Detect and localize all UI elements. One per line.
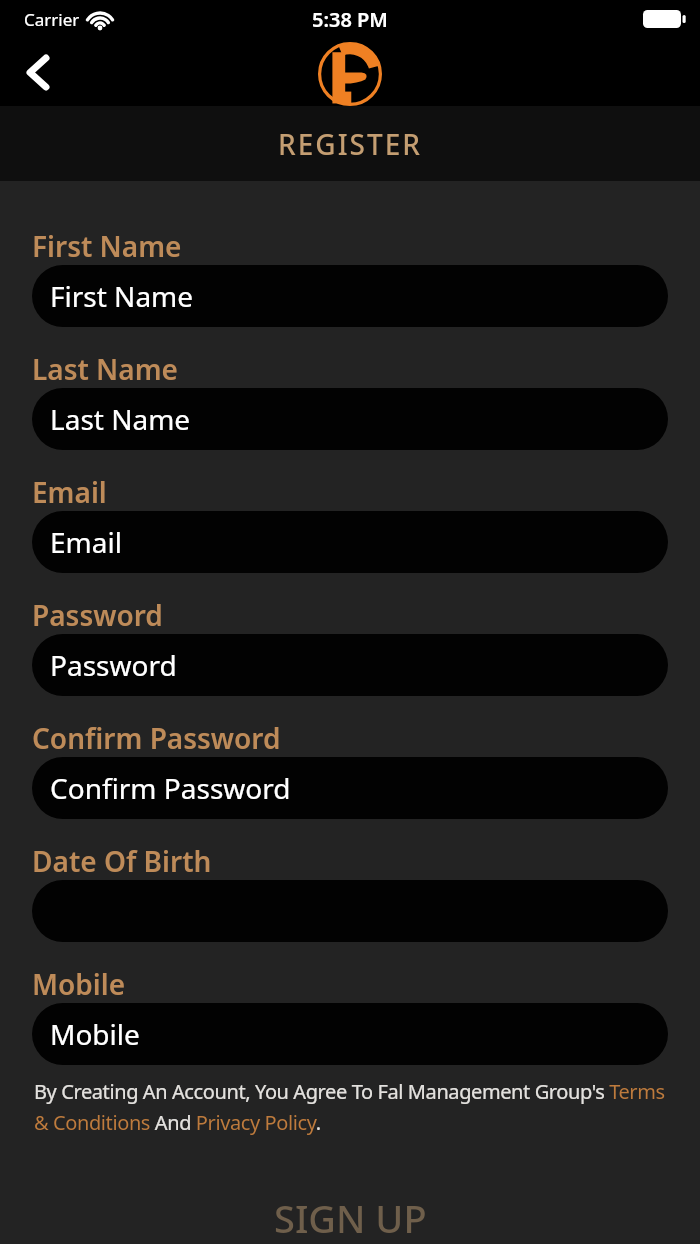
staticText: & Conditions And Privacy Policy.	[34, 1109, 321, 1136]
staticText: Confirm Password	[32, 719, 281, 755]
staticText: By Creating An Account, You Agree To Fal…	[34, 1078, 665, 1105]
staticText: Confirm Password	[50, 769, 291, 807]
button[interactable]: Last Name	[32, 388, 668, 450]
button[interactable]	[16, 50, 60, 94]
staticText: First Name	[32, 227, 182, 263]
button[interactable]: SIGN UP	[0, 1192, 700, 1244]
staticText: Last Name	[50, 400, 191, 438]
staticText: REGISTER	[278, 125, 422, 163]
staticText: Carrier	[24, 8, 80, 31]
button[interactable]: Confirm Password	[32, 757, 668, 819]
staticText: Password	[32, 596, 163, 632]
staticText: SIGN UP	[274, 1192, 427, 1244]
staticText: 5:38 PM	[312, 6, 388, 33]
staticText: Password	[50, 646, 177, 684]
staticText: Date Of Birth	[32, 842, 212, 878]
button[interactable]: Password	[32, 634, 668, 696]
staticText: Email	[50, 523, 122, 561]
staticText: Mobile	[50, 1015, 140, 1053]
staticText: First Name	[50, 277, 194, 315]
button[interactable]: Email	[32, 511, 668, 573]
button[interactable]: First Name	[32, 265, 668, 327]
staticText: Mobile	[32, 965, 126, 1001]
button[interactable]: Mobile	[32, 1003, 668, 1065]
staticText: Last Name	[32, 350, 178, 386]
button[interactable]	[32, 880, 668, 942]
staticText: Email	[32, 473, 107, 509]
